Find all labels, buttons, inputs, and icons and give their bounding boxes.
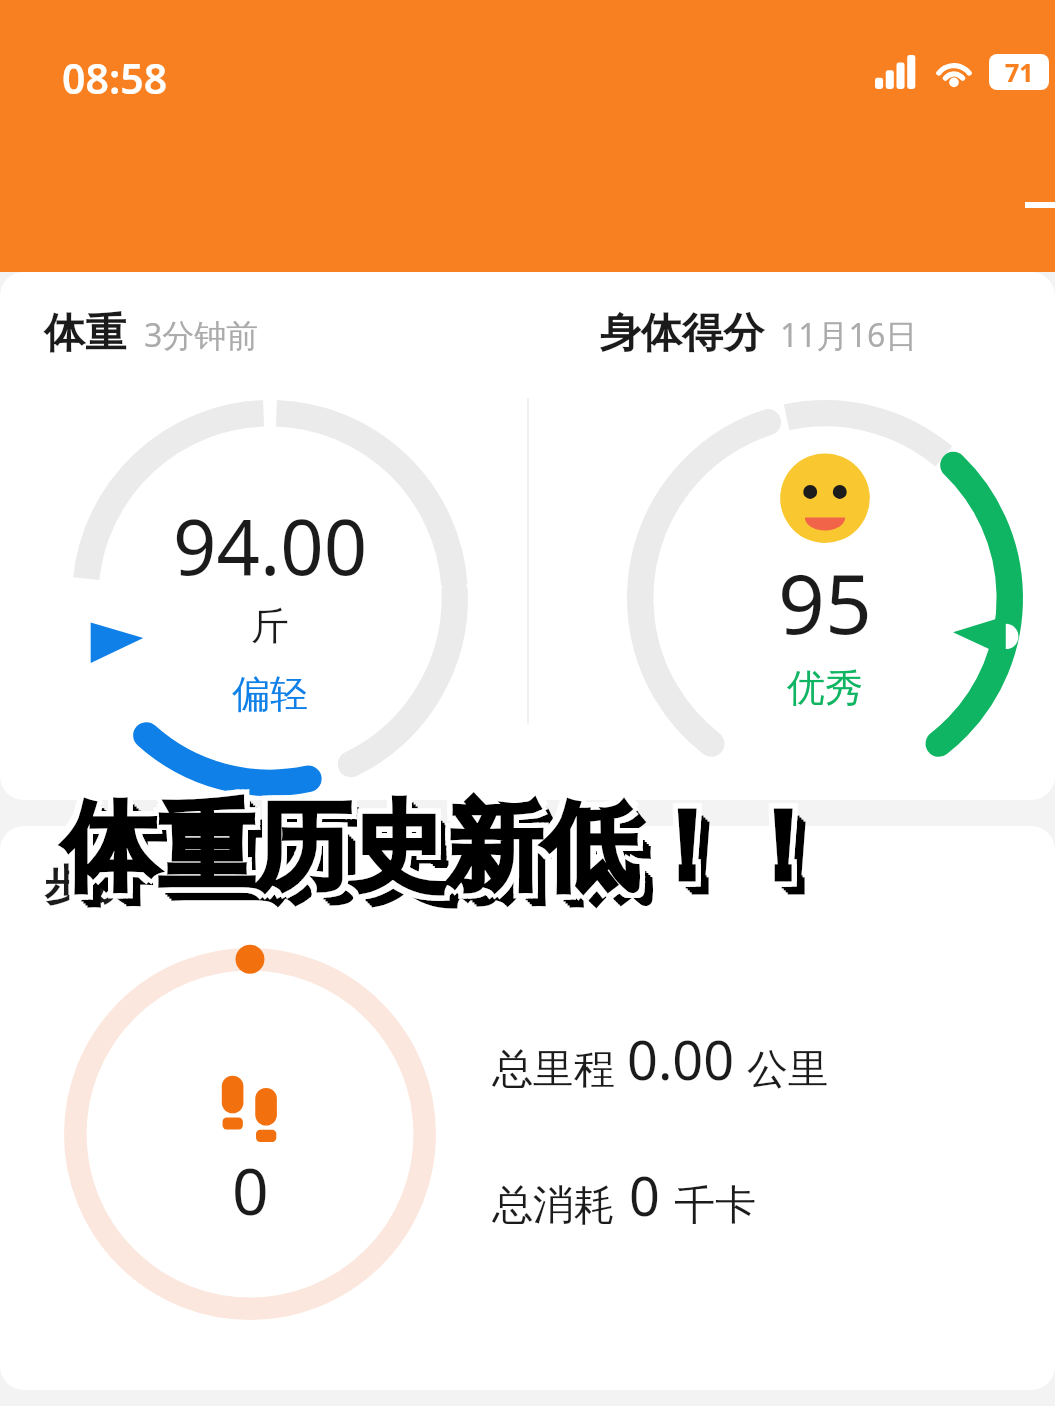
staticText: 95 bbox=[778, 546, 872, 658]
staticText: 体重历史新低！！ bbox=[67, 788, 835, 909]
staticText: 总里程 bbox=[492, 1044, 615, 1096]
staticText: 体重历史新低！！ bbox=[67, 793, 835, 914]
button[interactable]: 总里程 bbox=[492, 1022, 829, 1096]
staticText: 0 bbox=[629, 1158, 660, 1232]
staticText: 公里 bbox=[747, 1044, 829, 1096]
staticText: 08:58 bbox=[62, 50, 168, 106]
staticText: 体重 bbox=[44, 308, 126, 360]
staticText: 体重历史新低！！ bbox=[73, 799, 841, 920]
button[interactable]: 95 bbox=[625, 394, 1025, 784]
staticText: 0.00 bbox=[627, 1022, 735, 1096]
staticText: 体重历史新低！！ bbox=[62, 788, 830, 909]
staticText: 体重历史新低！！ bbox=[62, 788, 830, 909]
staticText: 千卡 bbox=[674, 1180, 756, 1232]
staticText: 总消耗 bbox=[492, 1180, 615, 1232]
staticText: 体重历史新低！！ bbox=[57, 793, 825, 914]
staticText: 体重历史新低！！ bbox=[67, 783, 835, 904]
staticText: 71 bbox=[1005, 55, 1034, 89]
staticText: 身体得分 bbox=[600, 308, 764, 360]
staticText: 体重历史新低！！ bbox=[66, 792, 834, 913]
staticText: 0 bbox=[232, 1147, 269, 1234]
staticText: 11月16日 bbox=[780, 313, 918, 357]
staticText: 94.00 bbox=[173, 494, 368, 598]
staticText: 斤 bbox=[251, 602, 289, 650]
other: Signal bbox=[875, 55, 917, 89]
button[interactable]: 身体得分 bbox=[600, 308, 918, 360]
button[interactable]: 0 bbox=[62, 946, 438, 1322]
button[interactable]: 体重 bbox=[44, 308, 259, 360]
staticText: 体重历史新低！！ bbox=[57, 788, 825, 909]
other: Wi-Fi bbox=[933, 55, 975, 89]
staticText: 体重历史新低！！ bbox=[69, 795, 837, 916]
staticText: 步数 bbox=[44, 860, 126, 912]
button[interactable]: 总消耗 bbox=[492, 1158, 756, 1232]
staticText: 体重历史新低！！ bbox=[62, 793, 830, 914]
staticText: 体重历史新低！！ bbox=[62, 783, 830, 904]
button[interactable]: 94.00 bbox=[70, 394, 470, 784]
staticText: 体重历史新低！！ bbox=[57, 783, 825, 904]
staticText: 偏轻 bbox=[232, 670, 308, 718]
staticText: 体重历史新低！！ bbox=[75, 801, 843, 922]
staticText: 3分钟前 bbox=[144, 313, 259, 357]
button[interactable]: 步数 bbox=[44, 860, 126, 912]
staticText: 体重历史新低！！ bbox=[64, 790, 832, 911]
staticText: 优秀 bbox=[787, 664, 863, 712]
staticText: 体重历史新低！！ bbox=[71, 797, 839, 918]
